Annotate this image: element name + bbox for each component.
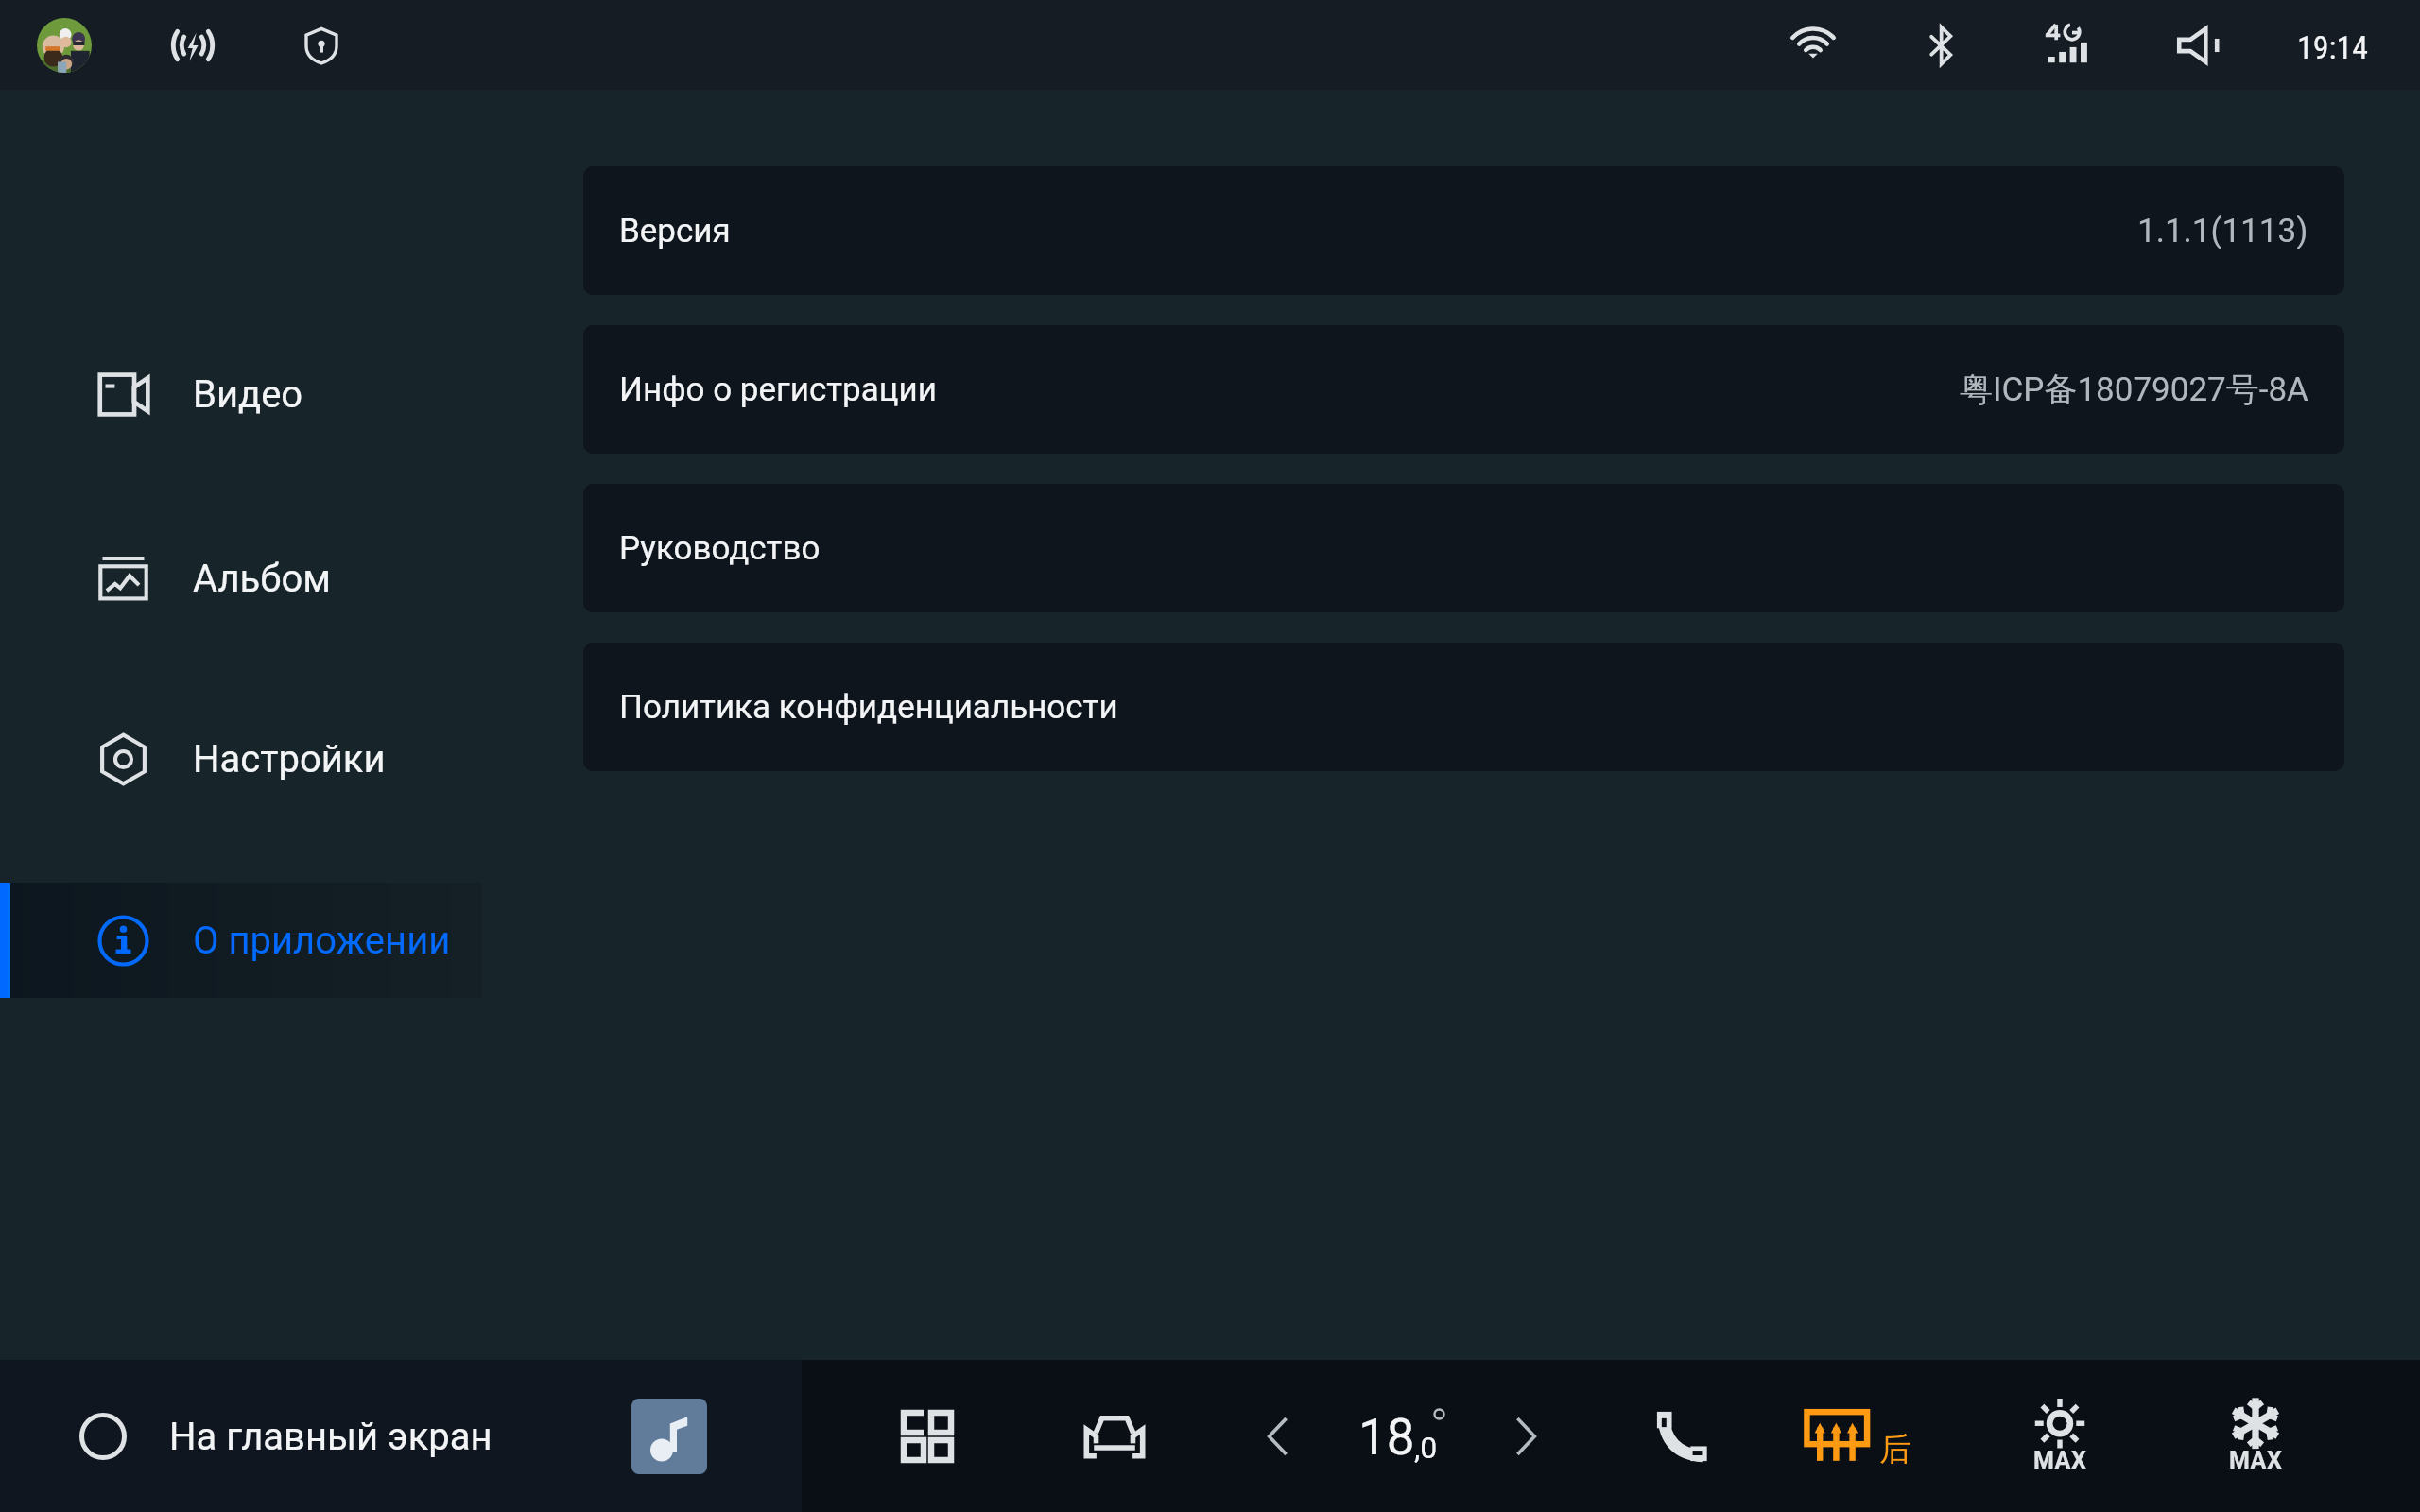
button[interactable]: Apps — [904, 1413, 951, 1460]
button[interactable]: Increase temperature — [1516, 1417, 1537, 1455]
staticText: ,0 — [1414, 1430, 1438, 1466]
staticText: MAX — [2229, 1447, 2283, 1474]
button[interactable]: Music — [631, 1399, 707, 1474]
button[interactable]: Политика конфиденциальности — [583, 643, 2344, 771]
staticText: Версия — [619, 212, 731, 250]
button[interactable]: Volume — [2176, 25, 2227, 66]
button[interactable]: Настройки — [0, 701, 482, 816]
button[interactable]: Альбом — [0, 521, 482, 636]
staticText: 1.1.1(1113) — [2137, 212, 2308, 250]
staticText: Политика конфиденциальности — [619, 688, 1118, 727]
button[interactable]: Инфо о регистрации — [583, 325, 2344, 454]
button[interactable]: О приложении — [0, 883, 482, 998]
button[interactable]: На главный экран — [79, 1380, 493, 1493]
button[interactable]: Phone — [1654, 1409, 1709, 1464]
staticText: Альбом — [193, 557, 331, 601]
button[interactable]: Версия — [583, 166, 2344, 295]
button[interactable]: Wireless charging — [166, 25, 219, 66]
button[interactable]: Decrease temperature — [1267, 1417, 1288, 1455]
staticText: Инфо о регистрации — [619, 370, 937, 409]
staticText: 19:14 — [2297, 28, 2369, 66]
staticText: Видео — [193, 372, 303, 417]
button[interactable]: Car — [1083, 1415, 1146, 1458]
button[interactable]: Profile — [37, 18, 92, 73]
button[interactable]: Mobile signal 4G — [2041, 23, 2098, 68]
button[interactable]: Bluetooth — [1925, 24, 1959, 67]
button[interactable]: Max AC — [2225, 1395, 2286, 1474]
staticText: 后 — [1879, 1429, 1911, 1469]
button[interactable]: Rear defrost — [1804, 1404, 1885, 1469]
button[interactable]: Max heat — [2030, 1395, 2090, 1474]
staticText: Руководство — [619, 529, 821, 568]
button[interactable]: Wi-Fi — [1790, 29, 1836, 61]
staticText: На главный экран — [169, 1415, 493, 1459]
staticText: 18 — [1358, 1408, 1415, 1467]
button[interactable]: Secure — [302, 26, 340, 65]
staticText: 粤ICP备18079027号-8A — [1960, 369, 2308, 410]
staticText: Настройки — [193, 737, 386, 782]
staticText: MAX — [2033, 1447, 2087, 1474]
button[interactable]: Видео — [0, 336, 482, 452]
button[interactable]: Руководство — [583, 484, 2344, 612]
staticText: О приложении — [193, 919, 451, 963]
